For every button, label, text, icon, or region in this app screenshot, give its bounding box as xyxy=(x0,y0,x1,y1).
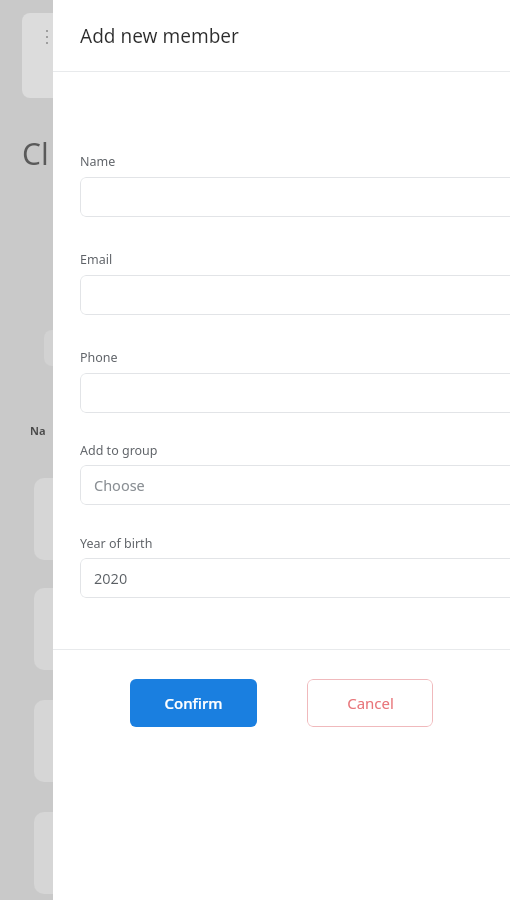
button[interactable] xyxy=(80,275,510,315)
staticText: Phone xyxy=(80,349,118,366)
staticText: Na xyxy=(30,423,46,438)
staticText: Confirm xyxy=(164,693,223,713)
button[interactable]: Choose xyxy=(80,465,510,505)
staticText: Choose xyxy=(94,475,510,495)
staticText: Email xyxy=(80,251,113,268)
staticText: Name xyxy=(80,153,116,170)
button[interactable]: Confirm xyxy=(130,679,257,727)
button[interactable]: Cancel xyxy=(307,679,433,727)
staticText: Cancel xyxy=(347,693,394,713)
staticText: Add new member xyxy=(80,23,239,49)
button[interactable] xyxy=(80,177,510,217)
staticText: 2020 xyxy=(94,568,510,588)
staticText: Cl xyxy=(22,133,49,174)
staticText: Add to group xyxy=(80,442,158,459)
staticText: Year of birth xyxy=(80,535,153,552)
button[interactable]: 2020 xyxy=(80,558,510,598)
button[interactable] xyxy=(80,373,510,413)
